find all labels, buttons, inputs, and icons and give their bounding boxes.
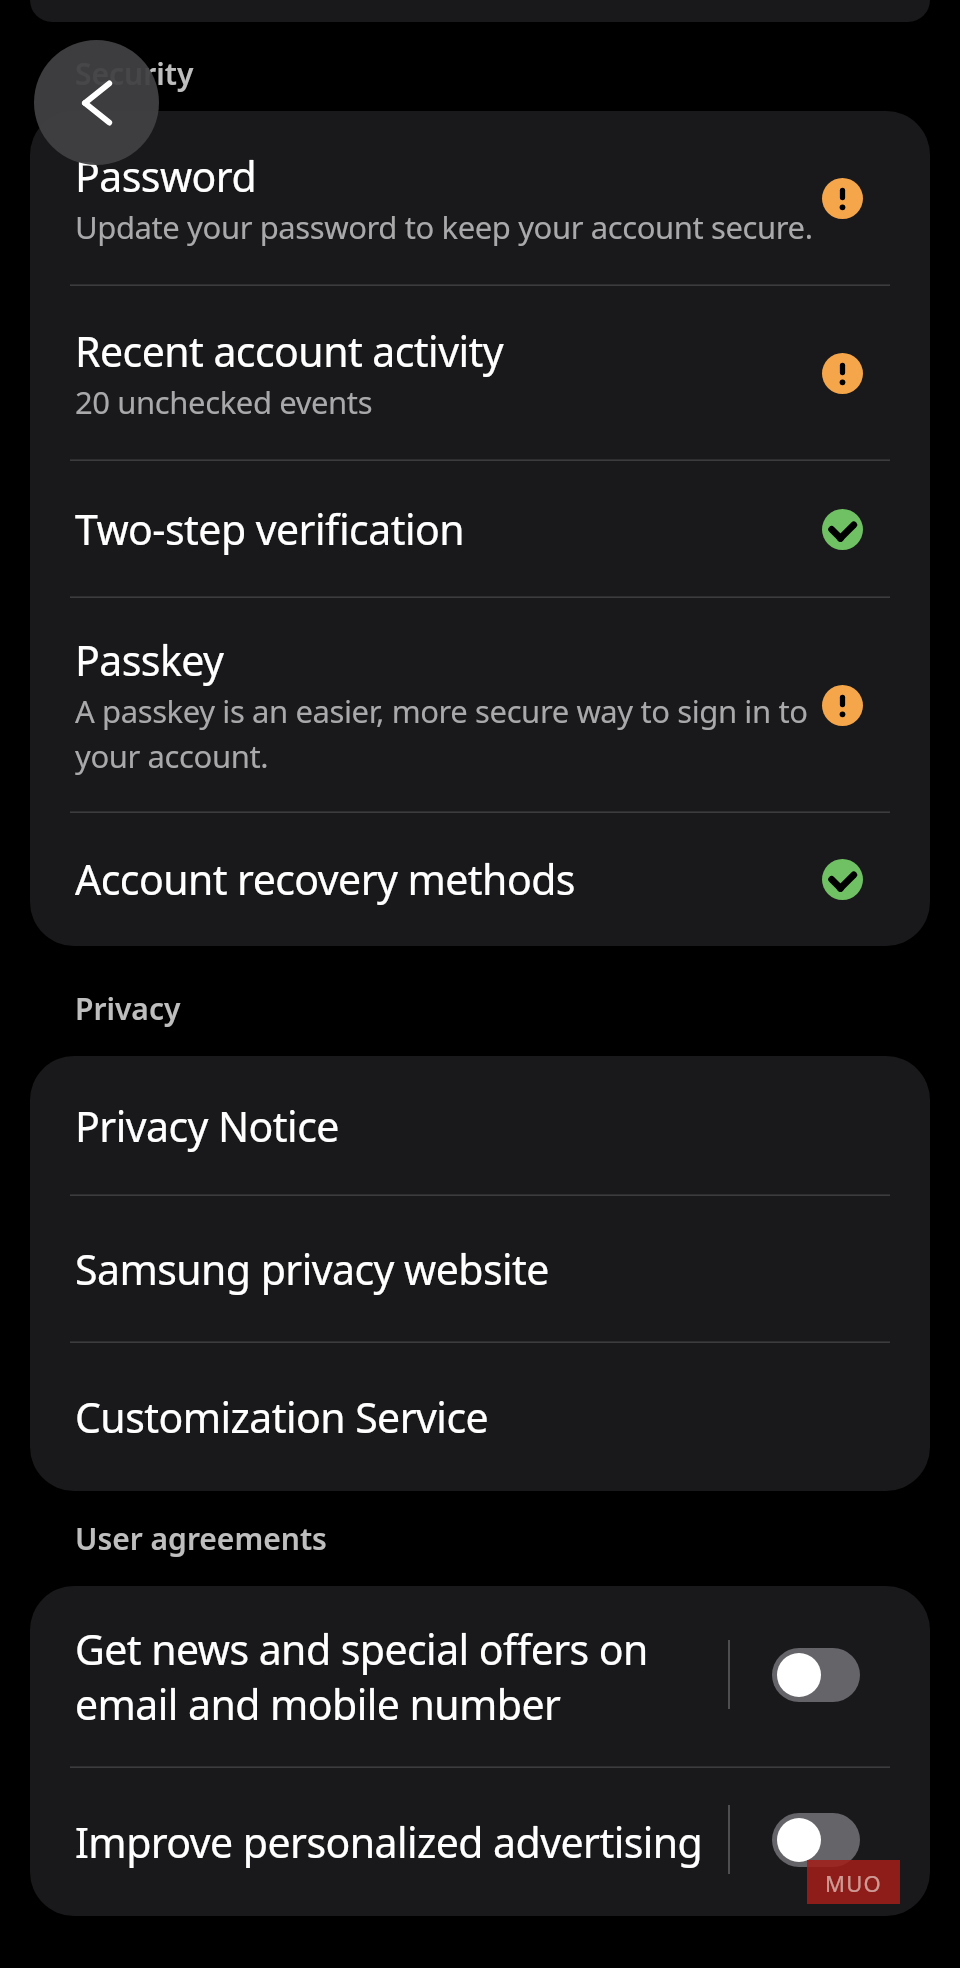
button[interactable]: Toggle off: [772, 1648, 860, 1702]
staticText: Privacy Notice: [75, 1099, 339, 1154]
staticText: Passkey: [75, 633, 224, 688]
button[interactable]: Samsung privacy website: [30, 1196, 930, 1343]
staticText: User agreements: [75, 1518, 327, 1559]
staticText: Account recovery methods: [75, 852, 575, 907]
staticText: Privacy: [75, 988, 181, 1029]
button[interactable]: Customization Service: [30, 1343, 930, 1491]
staticText: Improve personalized advertising: [75, 1815, 703, 1870]
staticText: 20 unchecked events: [75, 379, 373, 424]
staticText: Get news and special offers on email and…: [75, 1622, 675, 1732]
button[interactable]: Privacy Notice: [30, 1056, 930, 1196]
button[interactable]: Account recovery methods: [30, 813, 930, 946]
button[interactable]: Get news and special offers on email and…: [30, 1586, 930, 1768]
button[interactable]: Toggle off: [772, 1813, 860, 1867]
button[interactable]: Recent account activity: [30, 286, 930, 461]
button[interactable]: Improve personalized advertising: [30, 1768, 930, 1916]
staticText: Update your password to keep your accoun…: [75, 204, 813, 249]
staticText: Recent account activity: [75, 324, 504, 379]
staticText: Security: [75, 53, 194, 94]
staticText: Customization Service: [75, 1390, 489, 1445]
staticText: Password: [75, 149, 257, 204]
button[interactable]: Back: [34, 40, 159, 165]
button[interactable]: Password: [30, 111, 930, 286]
button[interactable]: Passkey: [30, 598, 930, 813]
button[interactable]: Two-step verification: [30, 461, 930, 598]
staticText: MUO: [825, 1868, 882, 1898]
staticText: Two-step verification: [75, 502, 464, 557]
staticText: Samsung privacy website: [75, 1242, 549, 1297]
staticText: A passkey is an easier, more secure way …: [75, 688, 825, 778]
